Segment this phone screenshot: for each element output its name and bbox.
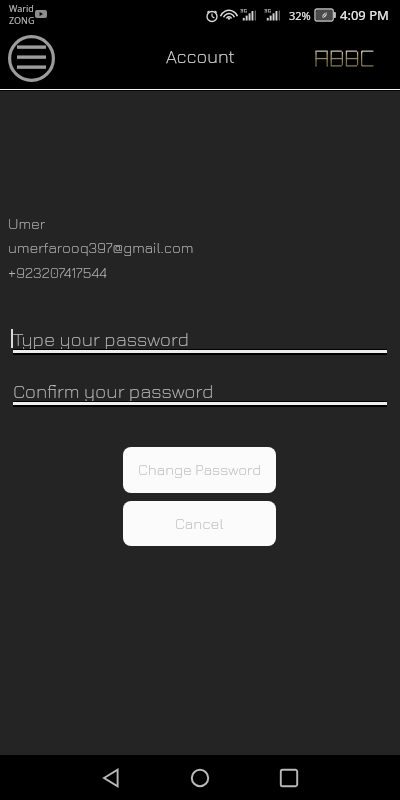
button[interactable]: Open navigation menu (8, 35, 55, 82)
staticText: Umer (8, 215, 46, 233)
staticText: ZONG (9, 14, 35, 26)
button[interactable]: Confirm your password (0, 378, 400, 408)
staticText: Cancel (175, 515, 224, 533)
staticText: Warid (9, 2, 34, 14)
button[interactable]: Cancel (123, 501, 276, 546)
staticText: Type your password (13, 328, 189, 350)
button[interactable]: Home (178, 756, 222, 800)
staticText: +923207417544 (8, 264, 107, 282)
button[interactable]: Back (89, 756, 133, 800)
button[interactable]: Recent apps (267, 756, 311, 800)
button[interactable]: Change Password (123, 447, 276, 493)
staticText: Account (166, 46, 235, 67)
staticText: umerfarooq397@gmail.com (8, 239, 194, 257)
button[interactable]: ABBC (310, 44, 380, 72)
button[interactable]: Type your password (0, 326, 400, 356)
staticText: 32% (289, 8, 311, 23)
staticText: 4:09 PM (340, 6, 389, 24)
staticText: Change Password (138, 461, 262, 479)
staticText: Confirm your password (13, 380, 214, 402)
